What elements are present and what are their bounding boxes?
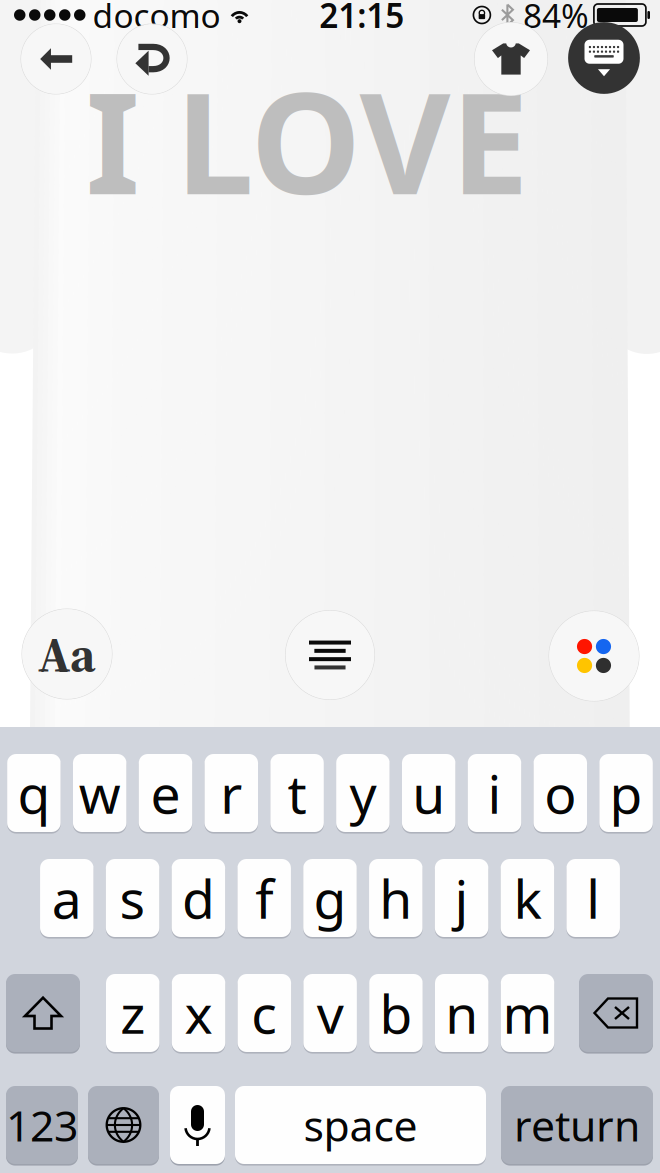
staticText: q (17, 758, 50, 828)
button[interactable]: d (172, 857, 225, 939)
button[interactable]: Hide keyboard (567, 21, 640, 94)
staticText: h (379, 863, 412, 933)
staticText: f (255, 863, 273, 933)
staticText: s (120, 863, 146, 933)
staticText: d (182, 863, 215, 933)
staticText: 21:15 (319, 0, 404, 37)
button[interactable]: f (237, 857, 291, 939)
button[interactable]: Font (21, 608, 112, 699)
button[interactable]: k (501, 857, 554, 939)
button[interactable]: Text colour (548, 610, 639, 701)
button[interactable]: t (270, 752, 324, 834)
button[interactable]: j (435, 857, 488, 939)
staticText: p (610, 758, 643, 828)
button[interactable]: x (172, 972, 225, 1054)
button[interactable]: space (235, 1084, 486, 1166)
staticText: o (544, 758, 576, 828)
button[interactable]: Redo (116, 23, 187, 94)
staticText: g (313, 863, 346, 933)
staticText: y (349, 758, 376, 828)
staticText: n (445, 978, 478, 1048)
staticText: z (120, 978, 145, 1048)
button[interactable]: w (73, 752, 126, 834)
button[interactable]: Text alignment (285, 610, 375, 700)
button[interactable]: y (336, 752, 390, 834)
staticText: b (379, 978, 412, 1048)
staticText: k (513, 863, 541, 933)
staticText: u (412, 758, 445, 828)
staticText: x (185, 978, 213, 1048)
button[interactable]: o (533, 752, 587, 834)
button[interactable]: v (303, 972, 357, 1054)
staticText: w (79, 758, 121, 828)
staticText: I LOVE (85, 47, 528, 233)
button[interactable]: m (501, 972, 554, 1054)
button[interactable]: l (566, 857, 620, 939)
button[interactable]: c (238, 972, 291, 1054)
button[interactable]: Numbers (6, 1084, 78, 1166)
button[interactable]: Dictate (170, 1084, 225, 1166)
button[interactable]: return (501, 1084, 653, 1166)
button[interactable]: q (7, 752, 61, 834)
staticText: i (487, 758, 501, 828)
button[interactable]: z (106, 972, 159, 1054)
button[interactable]: p (599, 752, 653, 834)
button[interactable]: Shift (6, 972, 80, 1054)
staticText: t (288, 758, 307, 828)
staticText: return (514, 1097, 640, 1153)
staticText: l (586, 863, 600, 933)
button[interactable]: r (204, 752, 258, 834)
button[interactable]: Undo (20, 23, 91, 94)
staticText: space (303, 1097, 417, 1153)
button[interactable]: Next keyboard (88, 1084, 159, 1166)
button[interactable]: h (369, 857, 423, 939)
staticText: c (251, 978, 277, 1048)
staticText: r (220, 758, 242, 828)
staticText: 84% (523, 0, 589, 37)
staticText: v (317, 978, 344, 1048)
staticText: docomo (92, 0, 220, 37)
staticText: Aa (38, 620, 96, 688)
button[interactable]: e (139, 752, 192, 834)
staticText: m (502, 978, 552, 1048)
button[interactable]: g (303, 857, 357, 939)
button[interactable]: b (369, 972, 423, 1054)
staticText: j (455, 863, 469, 933)
button[interactable]: n (435, 972, 488, 1054)
staticText: e (150, 758, 180, 828)
staticText: 123 (6, 1097, 78, 1153)
button[interactable]: i (468, 752, 521, 834)
button[interactable]: Choose shirt (474, 22, 548, 96)
staticText: a (52, 863, 82, 933)
button[interactable]: a (40, 857, 94, 939)
button[interactable]: Delete (579, 972, 653, 1054)
button[interactable]: s (106, 857, 159, 939)
button[interactable]: u (402, 752, 455, 834)
